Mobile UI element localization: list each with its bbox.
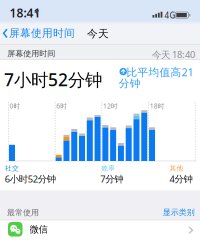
staticText: 6小时52分钟: [5, 173, 56, 185]
staticText: 今天: [87, 27, 109, 40]
staticText: 社交: [5, 164, 19, 172]
staticText: 屏幕使用时间: [7, 49, 55, 58]
staticText: 效率: [101, 164, 115, 172]
staticText: 今天 18:40: [152, 48, 195, 61]
staticText: 0时: [10, 102, 21, 110]
staticText: 12时: [103, 102, 118, 110]
staticText: 4分钟: [170, 173, 193, 185]
staticText: 显示类别: [163, 207, 195, 217]
staticText: 最常使用: [7, 208, 39, 217]
button[interactable]: 屏幕使用时间: [3, 22, 75, 45]
staticText: 7小时52分钟: [4, 68, 102, 91]
staticText: 7分钟: [100, 173, 123, 185]
staticText: 分钟: [119, 77, 141, 90]
staticText: 6时: [56, 102, 67, 110]
staticText: 4G: [164, 10, 175, 21]
staticText: 微信: [30, 224, 48, 235]
staticText: 比平均值高21: [126, 65, 193, 79]
button[interactable]: 微信: [0, 220, 200, 240]
staticText: 18时: [150, 102, 165, 110]
button[interactable]: 显示类别: [163, 207, 195, 217]
staticText: 18:41: [9, 5, 40, 21]
staticText: 屏幕使用时间: [9, 27, 75, 40]
staticText: 其他: [169, 164, 183, 172]
